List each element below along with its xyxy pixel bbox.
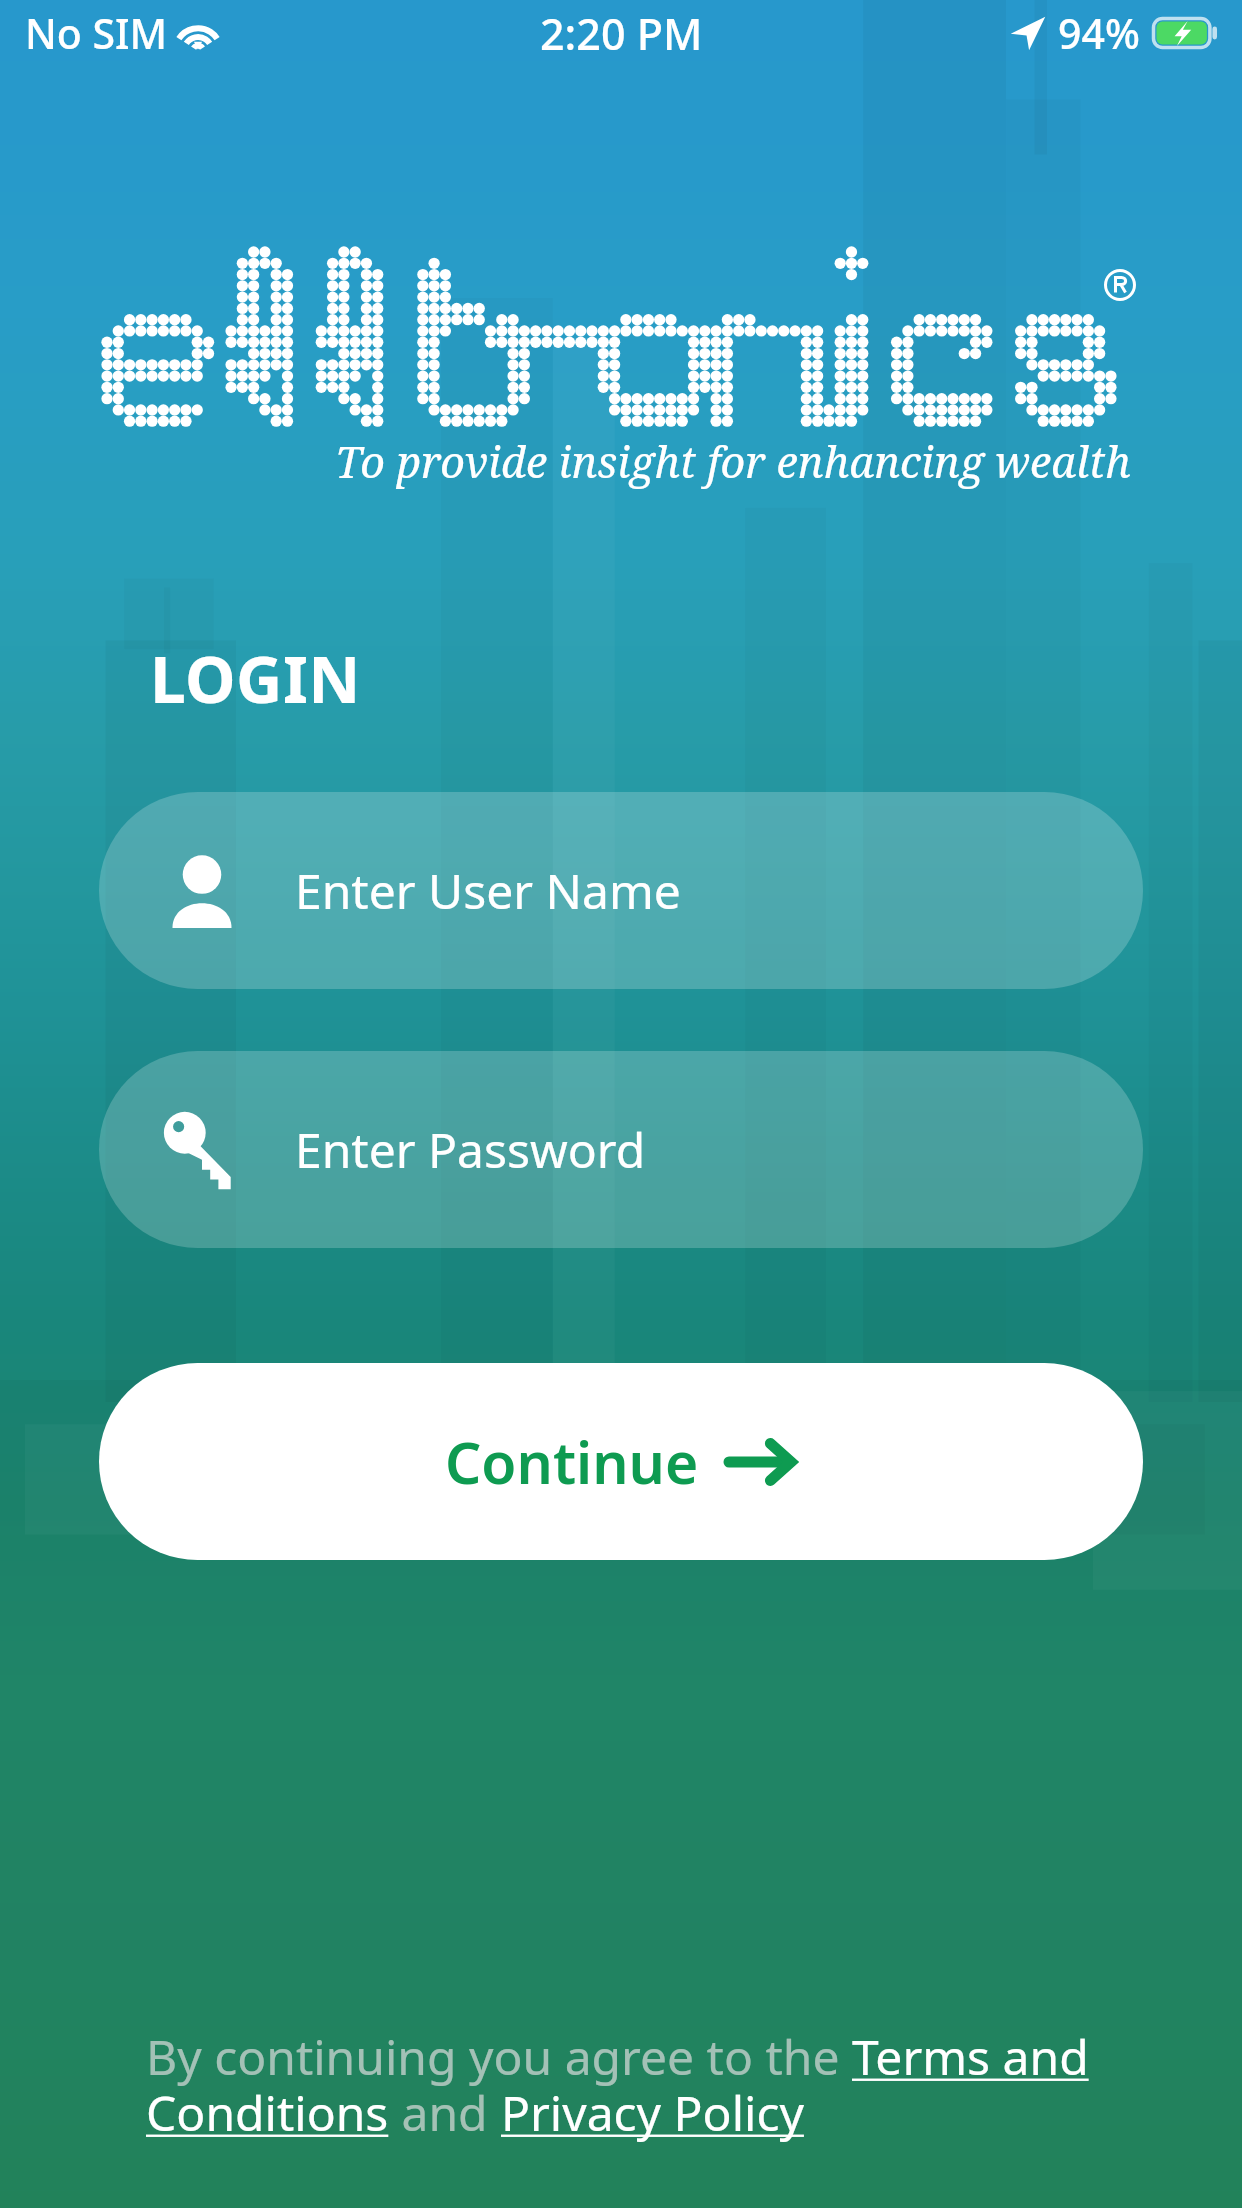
- button[interactable]: Continue: [99, 1363, 1143, 1560]
- staticText: 94%: [1058, 5, 1140, 61]
- staticText: By continuing you agree to the: [146, 2024, 852, 2089]
- staticText: Enter Password: [295, 1117, 646, 1182]
- staticText: No SIM: [25, 5, 168, 61]
- staticText: and: [389, 2080, 501, 2145]
- staticText: Enter User Name: [295, 858, 681, 923]
- button[interactable]: Conditions: [146, 2080, 389, 2145]
- button[interactable]: Enter Password: [99, 1051, 1143, 1248]
- button[interactable]: Privacy Policy: [501, 2080, 804, 2145]
- staticText: 2:20 PM: [540, 4, 703, 63]
- staticText: Continue: [445, 1423, 699, 1501]
- button[interactable]: Enter User Name: [99, 792, 1143, 989]
- staticText: To provide insight for enhancing wealth: [224, 432, 1242, 491]
- button[interactable]: Terms and: [852, 2024, 1089, 2089]
- staticText: LOGIN: [150, 635, 361, 722]
